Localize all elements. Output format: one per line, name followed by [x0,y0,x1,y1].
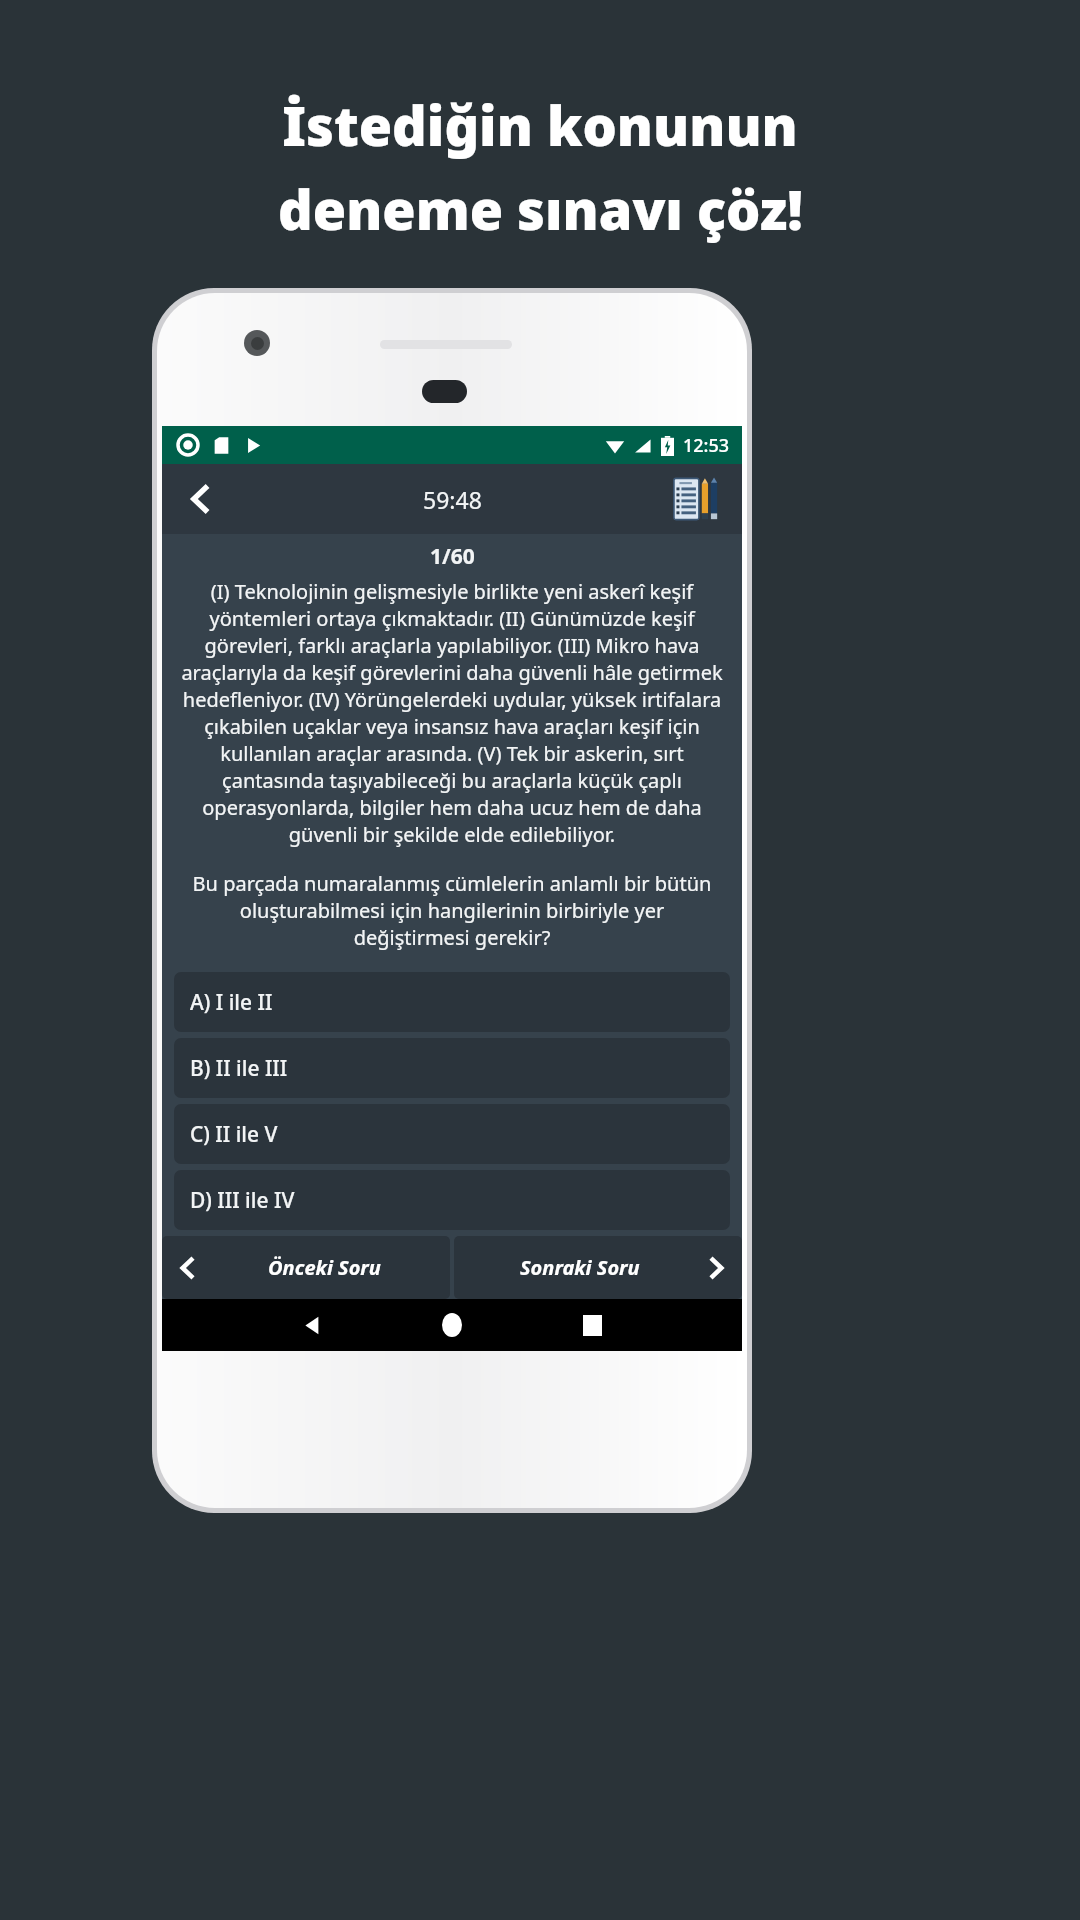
button[interactable]: C) II ile V [174,1104,730,1164]
button[interactable]: D) III ile IV [174,1170,730,1230]
button[interactable]: A) I ile II [174,972,730,1032]
button[interactable]: Önceki Soru [162,1236,450,1299]
staticText: A) I ile II [190,988,273,1017]
staticText: 59:48 [423,484,482,515]
staticText: C) II ile V [190,1120,278,1149]
button[interactable]: Back [172,471,228,527]
staticText: 1/60 [430,542,475,571]
staticText: Sonraki Soru [520,1254,640,1281]
staticText: D) III ile IV [190,1186,295,1215]
staticText: İstediğin konunun [282,88,798,162]
button[interactable]: B) II ile III [174,1038,730,1098]
button[interactable]: Home [428,1301,476,1349]
staticText: Bu parçada numaralanmış cümlelerin anlam… [184,870,720,951]
staticText: 12:53 [683,433,730,458]
button[interactable]: Question list [662,468,732,530]
button[interactable]: Back [288,1301,336,1349]
staticText: Önceki Soru [268,1254,381,1281]
button[interactable]: Sonraki Soru [454,1236,742,1299]
staticText: (I) Teknolojinin gelişmesiyle birlikte y… [170,578,734,848]
button[interactable]: Recents [568,1301,616,1349]
staticText: B) II ile III [190,1054,288,1083]
staticText: deneme sınavı çöz! [278,172,803,246]
